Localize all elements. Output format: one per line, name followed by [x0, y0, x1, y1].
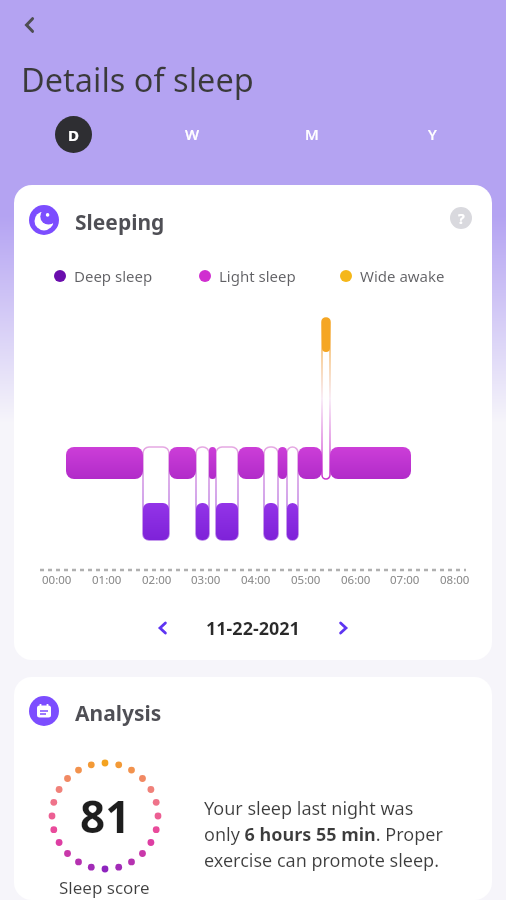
staticText: Sleep score [59, 876, 150, 899]
button[interactable] [148, 613, 178, 643]
staticText: Analysis [75, 699, 162, 728]
button[interactable]: D [55, 116, 92, 153]
button[interactable]: W [133, 115, 252, 153]
staticText: 81 [80, 786, 131, 846]
staticText: D [68, 125, 79, 145]
staticText: Details of sleep [21, 57, 254, 101]
staticText: 05:00 [291, 572, 321, 588]
button[interactable]: M [252, 115, 372, 153]
staticText: 00:00 [42, 572, 72, 588]
staticText: 02:00 [142, 572, 172, 588]
staticText: Wide awake [360, 266, 445, 286]
staticText: 11-22-2021 [206, 616, 300, 641]
button[interactable]: Y [372, 115, 492, 153]
staticText: W [185, 124, 200, 144]
staticText: ? [458, 209, 465, 228]
staticText: 08:00 [440, 572, 470, 588]
staticText: 01:00 [92, 572, 122, 588]
staticText: 04:00 [241, 572, 271, 588]
staticText: 07:00 [390, 572, 420, 588]
staticText: M [305, 124, 319, 144]
staticText: Y [428, 124, 437, 144]
button[interactable] [328, 613, 358, 643]
staticText: 03:00 [191, 572, 221, 588]
staticText: Sleeping [75, 208, 165, 237]
button[interactable]: ? [450, 207, 472, 229]
staticText: Your sleep last night was only 6 hours 5… [204, 796, 443, 873]
staticText: Deep sleep [74, 266, 153, 286]
staticText: Light sleep [219, 266, 296, 286]
staticText: 06:00 [341, 572, 371, 588]
button[interactable] [14, 9, 46, 41]
